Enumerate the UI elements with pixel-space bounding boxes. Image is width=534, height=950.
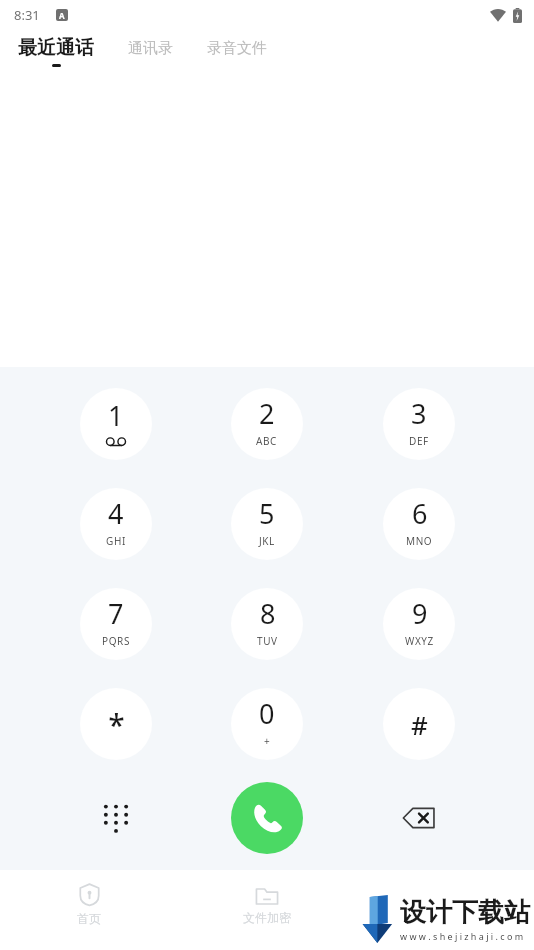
- staticText: 最近通话: [18, 36, 94, 60]
- button[interactable]: Key 3: [383, 388, 455, 460]
- staticText: 1: [108, 397, 124, 434]
- button[interactable]: 通讯录: [124, 30, 177, 67]
- staticText: 8: [260, 595, 276, 632]
- staticText: TUV: [257, 634, 278, 648]
- button[interactable]: Key 5: [231, 488, 303, 560]
- button[interactable]: 录音文件: [203, 30, 271, 67]
- button[interactable]: Nav item: [356, 870, 534, 939]
- staticText: +: [264, 734, 271, 748]
- button[interactable]: Key 0: [231, 688, 303, 760]
- staticText: 6: [412, 495, 428, 532]
- staticText: WXYZ: [405, 634, 434, 648]
- staticText: DEF: [409, 434, 429, 448]
- staticText: 录音文件: [207, 39, 267, 58]
- button[interactable]: Dialpad: [80, 782, 152, 854]
- staticText: #: [411, 707, 428, 742]
- button[interactable]: 最近通话: [14, 30, 98, 73]
- staticText: 0: [259, 695, 275, 732]
- staticText: 文件加密: [243, 910, 291, 925]
- button[interactable]: Backspace: [383, 782, 455, 854]
- staticText: PQRS: [102, 634, 130, 648]
- staticText: 设计下载站: [400, 896, 530, 929]
- staticText: *: [108, 704, 125, 745]
- button[interactable]: Key 6: [383, 488, 455, 560]
- staticText: 2: [259, 395, 275, 432]
- staticText: A: [59, 10, 65, 21]
- button[interactable]: Key 7: [80, 588, 152, 660]
- staticText: 9: [412, 595, 428, 632]
- staticText: GHI: [106, 534, 126, 548]
- button[interactable]: Key *: [80, 688, 152, 760]
- staticText: 7: [108, 595, 124, 632]
- staticText: 通讯录: [128, 39, 173, 58]
- button[interactable]: Key 2: [231, 388, 303, 460]
- staticText: 3: [411, 395, 427, 432]
- staticText: 4: [108, 495, 124, 532]
- button[interactable]: Key #: [383, 688, 455, 760]
- button[interactable]: 首页: [0, 870, 178, 939]
- staticText: 首页: [77, 911, 101, 926]
- button[interactable]: 文件加密: [178, 870, 356, 939]
- staticText: 5: [259, 495, 275, 532]
- staticText: JKL: [259, 534, 275, 548]
- button[interactable]: Key 1: [80, 388, 152, 460]
- staticText: 8:31: [14, 6, 40, 24]
- button[interactable]: Call: [231, 782, 303, 854]
- staticText: MNO: [406, 534, 433, 548]
- button[interactable]: Key 9: [383, 588, 455, 660]
- button[interactable]: Key 4: [80, 488, 152, 560]
- staticText: w w w . s h e j i z h a j i . c o m: [400, 930, 524, 942]
- button[interactable]: Key 8: [231, 588, 303, 660]
- staticText: ABC: [256, 434, 278, 448]
